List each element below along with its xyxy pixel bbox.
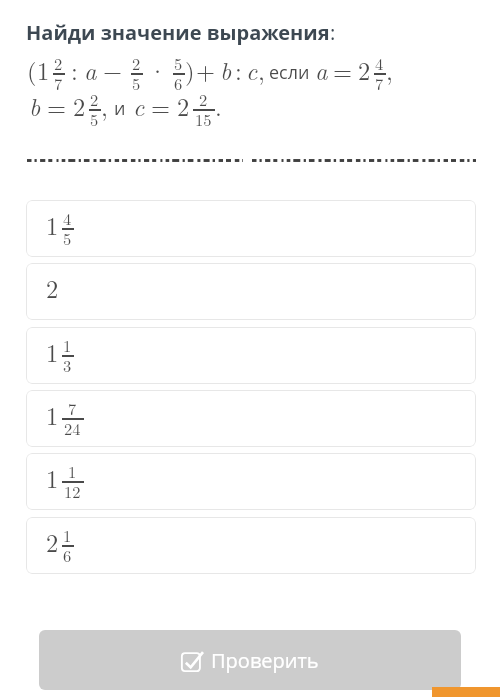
staticText: · [148, 52, 168, 87]
button[interactable]: 1 [26, 390, 476, 447]
staticText: ) [185, 52, 195, 87]
staticText: 5 [132, 71, 141, 94]
staticText: c [246, 52, 258, 87]
staticText: 1 [46, 397, 59, 432]
other: Проверить [181, 650, 203, 672]
staticText: + [196, 52, 216, 87]
staticText: 6 [174, 71, 183, 94]
staticText: если [269, 60, 310, 85]
staticText: 2 [132, 51, 141, 74]
button[interactable]: 2 [26, 263, 476, 320]
staticText: 12 [64, 479, 81, 502]
staticText: 7 [375, 71, 384, 94]
button[interactable]: 1 [26, 200, 476, 257]
staticText: b [220, 52, 232, 87]
staticText: , [101, 88, 108, 123]
staticText: 3 [63, 353, 72, 376]
staticText: 1 [63, 523, 72, 546]
staticText: 6 [63, 543, 72, 566]
staticText: 1 [63, 333, 72, 356]
staticText: 2 [177, 88, 190, 123]
staticText: 24 [64, 416, 81, 439]
staticText: 2 [73, 88, 86, 123]
staticText: 15 [195, 107, 212, 130]
staticText: 7 [54, 71, 63, 94]
staticText: и [114, 96, 126, 121]
button[interactable]: 1 [26, 327, 476, 384]
staticText: : [330, 19, 336, 46]
staticText: : [71, 52, 78, 87]
staticText: b [29, 88, 41, 123]
staticText: 2 [358, 52, 371, 87]
staticText: 4 [375, 51, 384, 74]
staticText: 1 [37, 52, 50, 87]
staticText: 2 [46, 524, 59, 559]
staticText: 4 [63, 206, 72, 229]
staticText: 1 [68, 459, 77, 482]
staticText: − [103, 52, 123, 87]
staticText: 2 [54, 51, 63, 74]
staticText: c [133, 88, 145, 123]
staticText: 2 [90, 87, 99, 110]
staticText: a [315, 52, 328, 87]
staticText: = [333, 52, 353, 87]
staticText: = [47, 88, 67, 123]
button[interactable]: Проверить [39, 630, 461, 690]
staticText: 5 [174, 51, 183, 74]
staticText: 2 [46, 270, 59, 305]
staticText: : [235, 52, 242, 87]
staticText: 5 [90, 107, 99, 130]
staticText: ( [27, 52, 37, 87]
staticText: = [151, 88, 171, 123]
button[interactable]: 1 [26, 453, 476, 510]
staticText: a [84, 52, 97, 87]
staticText: Найди значение выражения [26, 19, 330, 46]
staticText: 5 [63, 226, 72, 249]
staticText: . [215, 88, 222, 123]
button[interactable]: 2 [26, 517, 476, 574]
staticText: Проверить [211, 647, 319, 674]
staticText: 1 [46, 207, 59, 242]
staticText: 7 [68, 396, 77, 419]
staticText: 2 [199, 87, 208, 110]
staticText: , [258, 52, 265, 87]
staticText: , [386, 52, 393, 87]
staticText: 1 [46, 334, 59, 369]
staticText: 1 [46, 460, 59, 495]
